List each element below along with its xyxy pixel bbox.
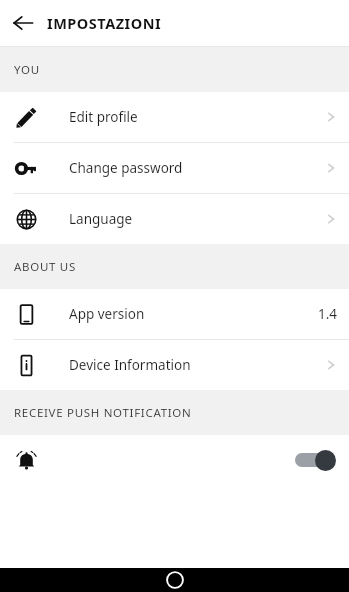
other: Notifications	[14, 448, 38, 472]
button[interactable]: Device Information	[0, 340, 349, 390]
staticText: Language	[69, 210, 133, 228]
button[interactable]: Receive push notification toggle	[293, 449, 337, 471]
button[interactable]: Back	[5, 5, 41, 41]
staticText: Edit profile	[69, 108, 138, 126]
staticText: Change password	[69, 159, 183, 177]
staticText: RECEIVE PUSH NOTIFICATION	[14, 405, 192, 421]
staticText: Device Information	[69, 356, 191, 374]
staticText: YOU	[14, 62, 40, 78]
staticText: 1.4	[318, 305, 338, 323]
staticText: App version	[69, 305, 145, 323]
button[interactable]: Home	[163, 568, 187, 592]
button[interactable]: Edit profile	[0, 92, 349, 142]
button[interactable]: App version	[0, 289, 349, 339]
staticText: IMPOSTAZIONI	[47, 13, 162, 33]
button[interactable]: Language	[0, 194, 349, 244]
button[interactable]: Notifications	[0, 435, 349, 485]
button[interactable]: Change password	[0, 143, 349, 193]
staticText: ABOUT US	[14, 259, 76, 275]
